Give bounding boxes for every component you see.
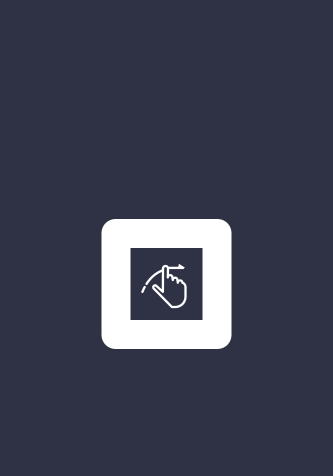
button[interactable]: Swipe right gesture: [101, 219, 231, 349]
